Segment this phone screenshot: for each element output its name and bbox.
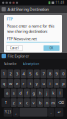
button[interactable]: [19, 108, 47, 117]
staticText: n: [46, 100, 48, 105]
button[interactable]: h: [37, 89, 43, 97]
staticText: .: [51, 109, 52, 115]
button[interactable]: .: [48, 108, 54, 117]
button[interactable]: 0: [60, 69, 66, 78]
button[interactable]: ⌫: [57, 98, 65, 107]
staticText: ⌫: [58, 100, 64, 105]
staticText: 9: [56, 71, 58, 76]
staticText: Cancel: [10, 46, 19, 50]
staticText: Subscription: [22, 62, 39, 66]
staticText: 0: [62, 71, 64, 76]
staticText: 6: [36, 71, 38, 76]
staticText: Please enter a name for this new sharing…: [6, 23, 54, 34]
button[interactable]: 1: [1, 69, 7, 78]
button[interactable]: 2: [7, 69, 13, 78]
staticText: FTP Newsvine.net: [6, 36, 36, 41]
button[interactable]: v: [30, 98, 36, 107]
staticText: Add Sharing Destination: [7, 7, 48, 12]
button[interactable]: t: [27, 79, 33, 88]
staticText: ↑: [4, 100, 7, 105]
staticText: ?123: [4, 110, 11, 114]
staticText: r: [23, 81, 25, 86]
staticText: 11:48: [55, 1, 64, 4]
staticText: b: [39, 100, 41, 105]
button[interactable]: a: [4, 89, 10, 97]
staticText: l: [59, 90, 60, 96]
staticText: h: [39, 90, 41, 96]
staticText: c: [26, 100, 28, 105]
button[interactable]: o: [54, 79, 60, 88]
button[interactable]: l: [57, 89, 63, 97]
staticText: k: [52, 90, 54, 96]
button[interactable]: f: [24, 89, 30, 97]
staticText: j: [46, 90, 47, 96]
button[interactable]: e: [14, 79, 20, 88]
button[interactable]: x: [17, 98, 23, 107]
staticText: o: [56, 81, 58, 86]
staticText: a: [6, 90, 8, 96]
staticText: FTP: [6, 16, 12, 22]
staticText: 5: [29, 71, 31, 76]
staticText: File Explorer: [7, 53, 29, 59]
button[interactable]: Add Sharing Destination: [0, 5, 67, 13]
button[interactable]: z: [11, 98, 17, 107]
staticText: u: [42, 81, 44, 86]
staticText: 4: [23, 71, 25, 76]
staticText: v: [32, 100, 34, 105]
staticText: 2: [9, 71, 11, 76]
staticText: 7: [42, 71, 44, 76]
staticText: s: [13, 90, 15, 96]
button[interactable]: 8: [47, 69, 53, 78]
staticText: 8: [49, 71, 51, 76]
button[interactable]: 5: [27, 69, 33, 78]
staticText: 1: [3, 71, 5, 76]
staticText: x: [19, 100, 21, 105]
staticText: 3: [16, 71, 18, 76]
button[interactable]: 9: [54, 69, 60, 78]
staticText: e: [16, 81, 18, 86]
button[interactable]: Cancel: [6, 45, 22, 51]
staticText: y: [36, 81, 38, 86]
button[interactable]: q: [1, 79, 7, 88]
staticText: q: [3, 81, 5, 86]
button[interactable]: ?123: [4, 108, 12, 117]
button[interactable]: d: [17, 89, 23, 97]
staticText: OK: [49, 46, 53, 50]
button[interactable]: ,: [13, 108, 19, 117]
button[interactable]: r: [21, 79, 27, 88]
button[interactable]: j: [44, 89, 50, 97]
button[interactable]: ↵: [55, 108, 63, 117]
staticText: Subscribe: [4, 62, 17, 66]
staticText: ,: [15, 109, 16, 115]
staticText: w: [9, 81, 12, 86]
button[interactable]: 7: [40, 69, 46, 78]
button[interactable]: p: [60, 79, 66, 88]
button[interactable]: k: [50, 89, 56, 97]
button[interactable]: u: [40, 79, 46, 88]
staticText: f: [26, 90, 27, 96]
button[interactable]: 4: [21, 69, 27, 78]
staticText: ↵: [57, 110, 60, 114]
button[interactable]: 6: [34, 69, 40, 78]
staticText: t: [30, 81, 31, 86]
button[interactable]: 3: [14, 69, 20, 78]
button[interactable]: i: [47, 79, 53, 88]
button[interactable]: c: [24, 98, 30, 107]
staticText: g: [32, 90, 34, 96]
button[interactable]: s: [11, 89, 17, 97]
staticText: z: [13, 100, 15, 105]
button[interactable]: ↑: [1, 98, 10, 107]
button[interactable]: g: [30, 89, 36, 97]
button[interactable]: n: [44, 98, 50, 107]
button[interactable]: b: [37, 98, 43, 107]
button[interactable]: m: [50, 98, 56, 107]
button[interactable]: y: [34, 79, 40, 88]
staticText: d: [19, 90, 21, 96]
button[interactable]: w: [7, 79, 13, 88]
button[interactable]: OK: [43, 45, 59, 51]
staticText: p: [62, 81, 64, 86]
staticText: m: [51, 100, 55, 105]
